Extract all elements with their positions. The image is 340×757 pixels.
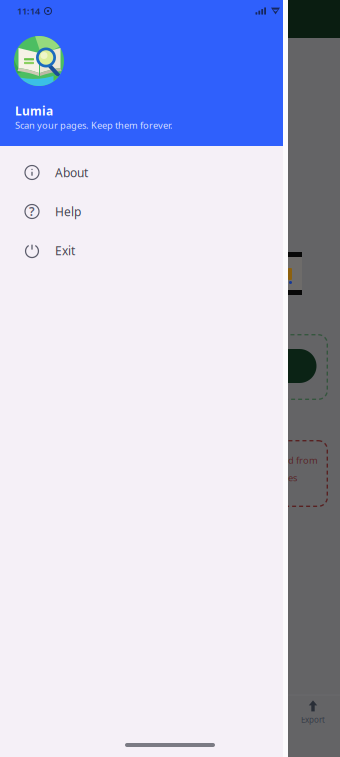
staticText: es bbox=[288, 471, 297, 484]
button[interactable]: ? bbox=[0, 192, 283, 231]
button[interactable]: Exit bbox=[0, 231, 283, 270]
staticText: ? bbox=[29, 203, 35, 219]
staticText: Help bbox=[55, 203, 81, 219]
staticText: Lumia bbox=[15, 103, 53, 119]
staticText: Exit bbox=[55, 242, 75, 258]
button[interactable]: Export bbox=[287, 694, 339, 757]
staticText: d from bbox=[288, 454, 318, 466]
staticText: About bbox=[55, 164, 88, 180]
button[interactable]: About bbox=[0, 153, 283, 192]
staticText: 11:14 bbox=[17, 5, 40, 17]
staticText: Scan your pages. Keep them forever. bbox=[15, 119, 173, 131]
staticText: Export bbox=[301, 714, 325, 725]
